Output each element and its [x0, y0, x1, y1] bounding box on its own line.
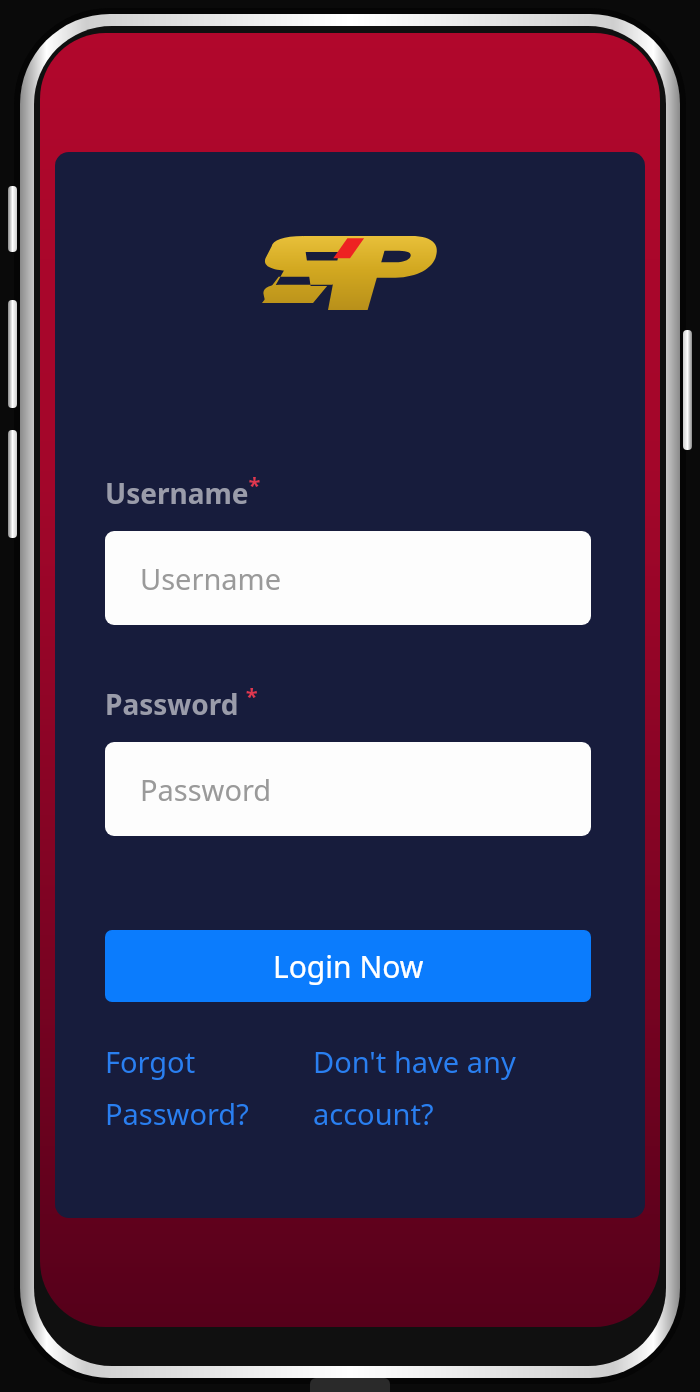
button[interactable]: Login Now [105, 930, 591, 1002]
staticText: Username [140, 559, 282, 598]
staticText: Don't have any account? [313, 1042, 516, 1133]
button[interactable]: Forgot Password? [105, 1042, 313, 1133]
button[interactable]: Username [105, 531, 591, 625]
staticText: Password [140, 770, 272, 809]
staticText: Login Now [273, 946, 424, 987]
staticText: Password * [105, 680, 258, 723]
button[interactable]: Password [105, 742, 591, 836]
staticText: Forgot Password? [105, 1042, 249, 1133]
button[interactable]: Don't have any account? [313, 1042, 543, 1133]
staticText: Username* [105, 469, 261, 512]
